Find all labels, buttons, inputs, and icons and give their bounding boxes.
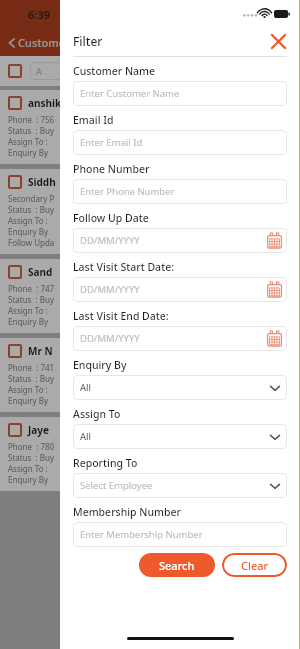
staticText: Phone : 780: [8, 441, 55, 452]
button[interactable]: Enter Membership Number: [73, 522, 287, 547]
staticText: Enter Phone Number: [80, 185, 282, 198]
button[interactable]: All: [73, 424, 287, 449]
staticText: Status : Buy: [8, 452, 55, 463]
staticText: DD/MM/YYYY: [80, 283, 267, 296]
staticText: Customers: [18, 35, 75, 50]
button[interactable]: Select Employee: [73, 473, 287, 498]
staticText: DD/MM/YYYY: [80, 234, 267, 247]
button[interactable]: Close filter: [266, 29, 290, 53]
staticText: Email Id: [73, 113, 114, 127]
button[interactable]: Enter Customer Name: [73, 81, 287, 106]
staticText: Siddh: [28, 175, 56, 189]
staticText: Assign To :: [8, 136, 48, 147]
staticText: Phone Number: [73, 162, 150, 176]
staticText: Filter: [73, 33, 266, 49]
staticText: Assign To :: [8, 384, 48, 395]
staticText: Enquiry By: [8, 395, 49, 406]
staticText: DD/MM/YYYY: [80, 332, 267, 345]
staticText: Follow Up Date: [73, 211, 149, 225]
staticText: A: [36, 65, 42, 77]
staticText: Enquiry By: [73, 358, 127, 372]
staticText: Last Visit Start Date:: [73, 260, 175, 274]
button[interactable]: Enter Phone Number: [73, 179, 287, 204]
staticText: Membership Number: [73, 505, 182, 519]
staticText: Assign To: [73, 407, 121, 421]
button[interactable]: Clear: [222, 553, 287, 577]
button[interactable]: All: [73, 375, 287, 400]
staticText: Secondary P: [8, 193, 55, 204]
button[interactable]: Back to Customers: [0, 28, 300, 56]
staticText: Enquiry By: [8, 316, 49, 327]
staticText: Assign To :: [8, 463, 48, 474]
staticText: Reporting To: [73, 456, 138, 470]
staticText: Search: [159, 558, 195, 573]
staticText: Enquiry By: [8, 474, 49, 485]
staticText: Sand: [28, 265, 53, 279]
staticText: Phone : 756: [8, 114, 55, 125]
staticText: Phone : 747: [8, 283, 55, 294]
button[interactable]: Search: [139, 553, 215, 577]
staticText: 6:39: [28, 7, 50, 22]
staticText: Status : Buy: [8, 204, 55, 215]
staticText: All: [80, 381, 268, 394]
staticText: Select Employee: [80, 479, 268, 492]
staticText: Assign To :: [8, 305, 48, 316]
staticText: anshika: [28, 96, 68, 110]
staticText: Status : Buy: [8, 294, 55, 305]
button[interactable]: DD/MM/YYYY: [73, 326, 287, 351]
staticText: Assign To :: [8, 215, 48, 226]
button[interactable]: DD/MM/YYYY: [73, 228, 287, 253]
staticText: Clear: [241, 558, 269, 573]
staticText: Status : Buy: [8, 373, 55, 384]
staticText: Enter Membership Number: [80, 528, 282, 541]
staticText: All: [80, 430, 268, 443]
staticText: Follow Upda: [8, 237, 55, 248]
staticText: Customer Name: [73, 64, 156, 78]
staticText: Mr N: [28, 344, 53, 358]
staticText: Enquiry By: [8, 147, 49, 158]
staticText: Enter Customer Name: [80, 87, 282, 100]
button[interactable]: Enter Email Id: [73, 130, 287, 155]
staticText: Last Visit End Date:: [73, 309, 169, 323]
staticText: Enter Email Id: [80, 136, 282, 149]
staticText: Status : Buy: [8, 125, 55, 136]
staticText: Phone : 741: [8, 362, 55, 373]
staticText: Jaye: [28, 423, 49, 437]
button[interactable]: DD/MM/YYYY: [73, 277, 287, 302]
staticText: Enquiry By: [8, 226, 49, 237]
